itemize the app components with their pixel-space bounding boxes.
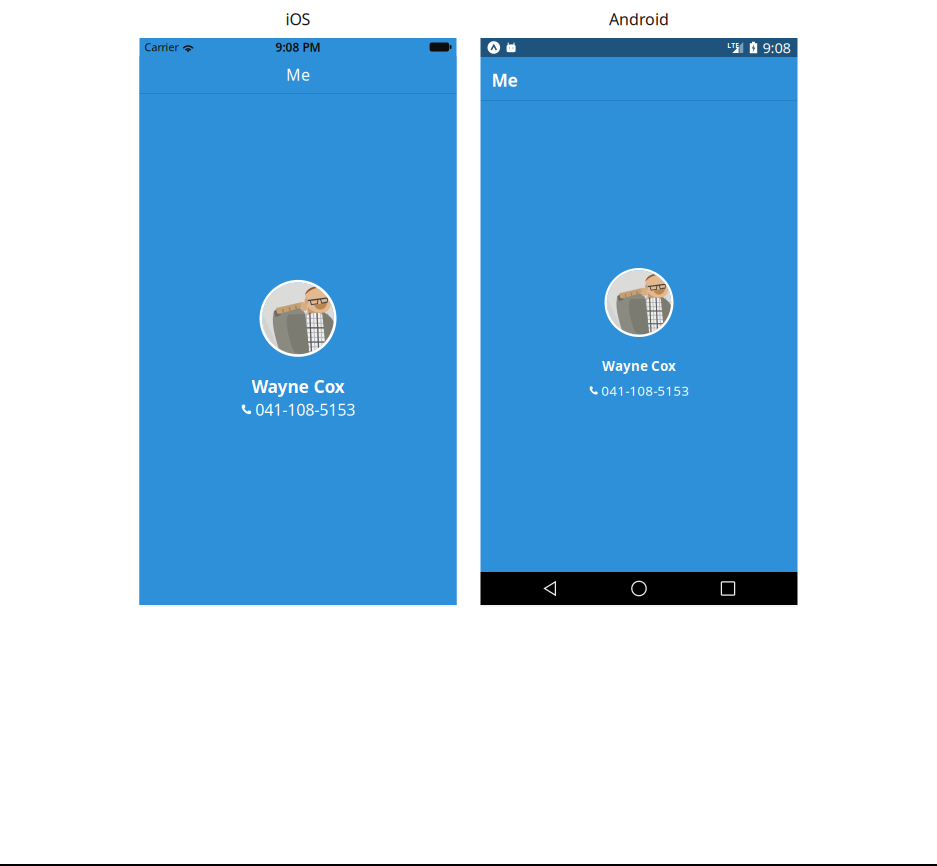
staticText: 9:08 — [762, 38, 790, 57]
staticText: 9:08 PM — [275, 39, 320, 55]
staticText: Me — [491, 68, 517, 91]
staticText: Android — [609, 8, 669, 30]
button[interactable]: 041-108-5153 — [241, 399, 355, 420]
staticText: Carrier — [144, 40, 178, 54]
button[interactable]: 041-108-5153 — [589, 382, 689, 399]
button[interactable]: Home — [594, 572, 683, 605]
staticText: iOS — [285, 8, 310, 30]
button[interactable]: Back — [505, 572, 594, 605]
staticText: Me — [286, 64, 310, 85]
staticText: 041-108-5153 — [601, 382, 689, 399]
staticText: 041-108-5153 — [255, 399, 355, 420]
staticText: LTE — [727, 41, 739, 50]
staticText: Wayne Cox — [602, 357, 676, 375]
staticText: Wayne Cox — [251, 375, 344, 398]
button[interactable]: Recents — [683, 572, 772, 605]
